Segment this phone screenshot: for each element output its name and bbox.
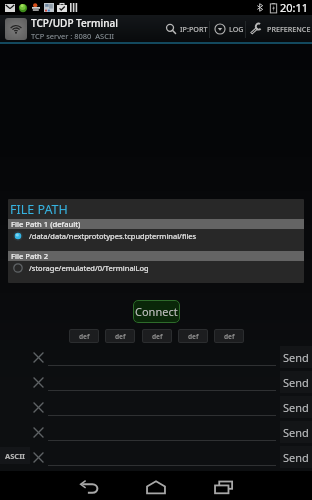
button[interactable]: IP:PORT (161, 16, 209, 42)
button[interactable]: Send (280, 396, 312, 418)
staticText: PREFERENCE (267, 24, 311, 34)
staticText: /data/data/nextprototypes.tcpudpterminal… (29, 231, 197, 241)
button[interactable]: ASCII (0, 447, 30, 464)
button[interactable]: def (178, 329, 208, 343)
staticText: TCP/UDP Terminal (31, 16, 118, 30)
staticText: def (152, 332, 163, 341)
staticText: def (188, 332, 199, 341)
button[interactable]: Send (280, 421, 312, 443)
staticText: IP:PORT (180, 24, 208, 34)
button[interactable]: Clear (29, 423, 48, 442)
button[interactable]: Connect (133, 300, 180, 323)
staticText: TCP server : 8080 ASCII (31, 31, 115, 41)
button[interactable]: def (105, 329, 135, 343)
button[interactable] (48, 446, 276, 466)
button[interactable] (48, 346, 276, 366)
button[interactable]: Clear (29, 348, 48, 367)
button[interactable]: Clear (29, 373, 48, 392)
button[interactable]: Home (142, 472, 170, 500)
staticText: LOG (229, 24, 244, 34)
staticText: 20:11 (280, 0, 309, 15)
staticText: ASCII (5, 451, 25, 461)
button[interactable]: Clear (29, 398, 48, 417)
staticText: /storage/emulated/0/TerminalLog (29, 263, 149, 273)
staticText: Connect (135, 304, 178, 319)
button[interactable]: /data/data/nextprototypes.tcpudpterminal… (8, 229, 304, 251)
staticText: Send (283, 450, 309, 465)
button[interactable]: def (214, 329, 244, 343)
staticText: def (115, 332, 126, 341)
button[interactable]: Recents (210, 472, 238, 500)
button[interactable]: Back (75, 472, 103, 500)
staticText: FILE PATH (10, 201, 68, 218)
button[interactable] (48, 396, 276, 416)
button[interactable]: /storage/emulated/0/TerminalLog (8, 261, 304, 283)
staticText: Send (283, 400, 309, 415)
button[interactable]: Send (280, 346, 312, 368)
button[interactable] (48, 421, 276, 441)
button[interactable]: LOG (210, 16, 245, 42)
staticText: def (79, 332, 90, 341)
staticText: Send (283, 375, 309, 390)
button[interactable]: Send (280, 446, 312, 468)
button[interactable]: PREFERENCE (246, 16, 312, 42)
button[interactable]: Send (280, 371, 312, 393)
staticText: File Path 1 (default) (11, 219, 81, 229)
button[interactable]: def (69, 329, 99, 343)
button[interactable] (48, 371, 276, 391)
staticText: Send (283, 350, 309, 365)
staticText: def (224, 332, 235, 341)
staticText: Send (283, 425, 309, 440)
button[interactable]: Clear (29, 448, 48, 467)
staticText: File Path 2 (11, 251, 49, 261)
button[interactable]: def (142, 329, 172, 343)
